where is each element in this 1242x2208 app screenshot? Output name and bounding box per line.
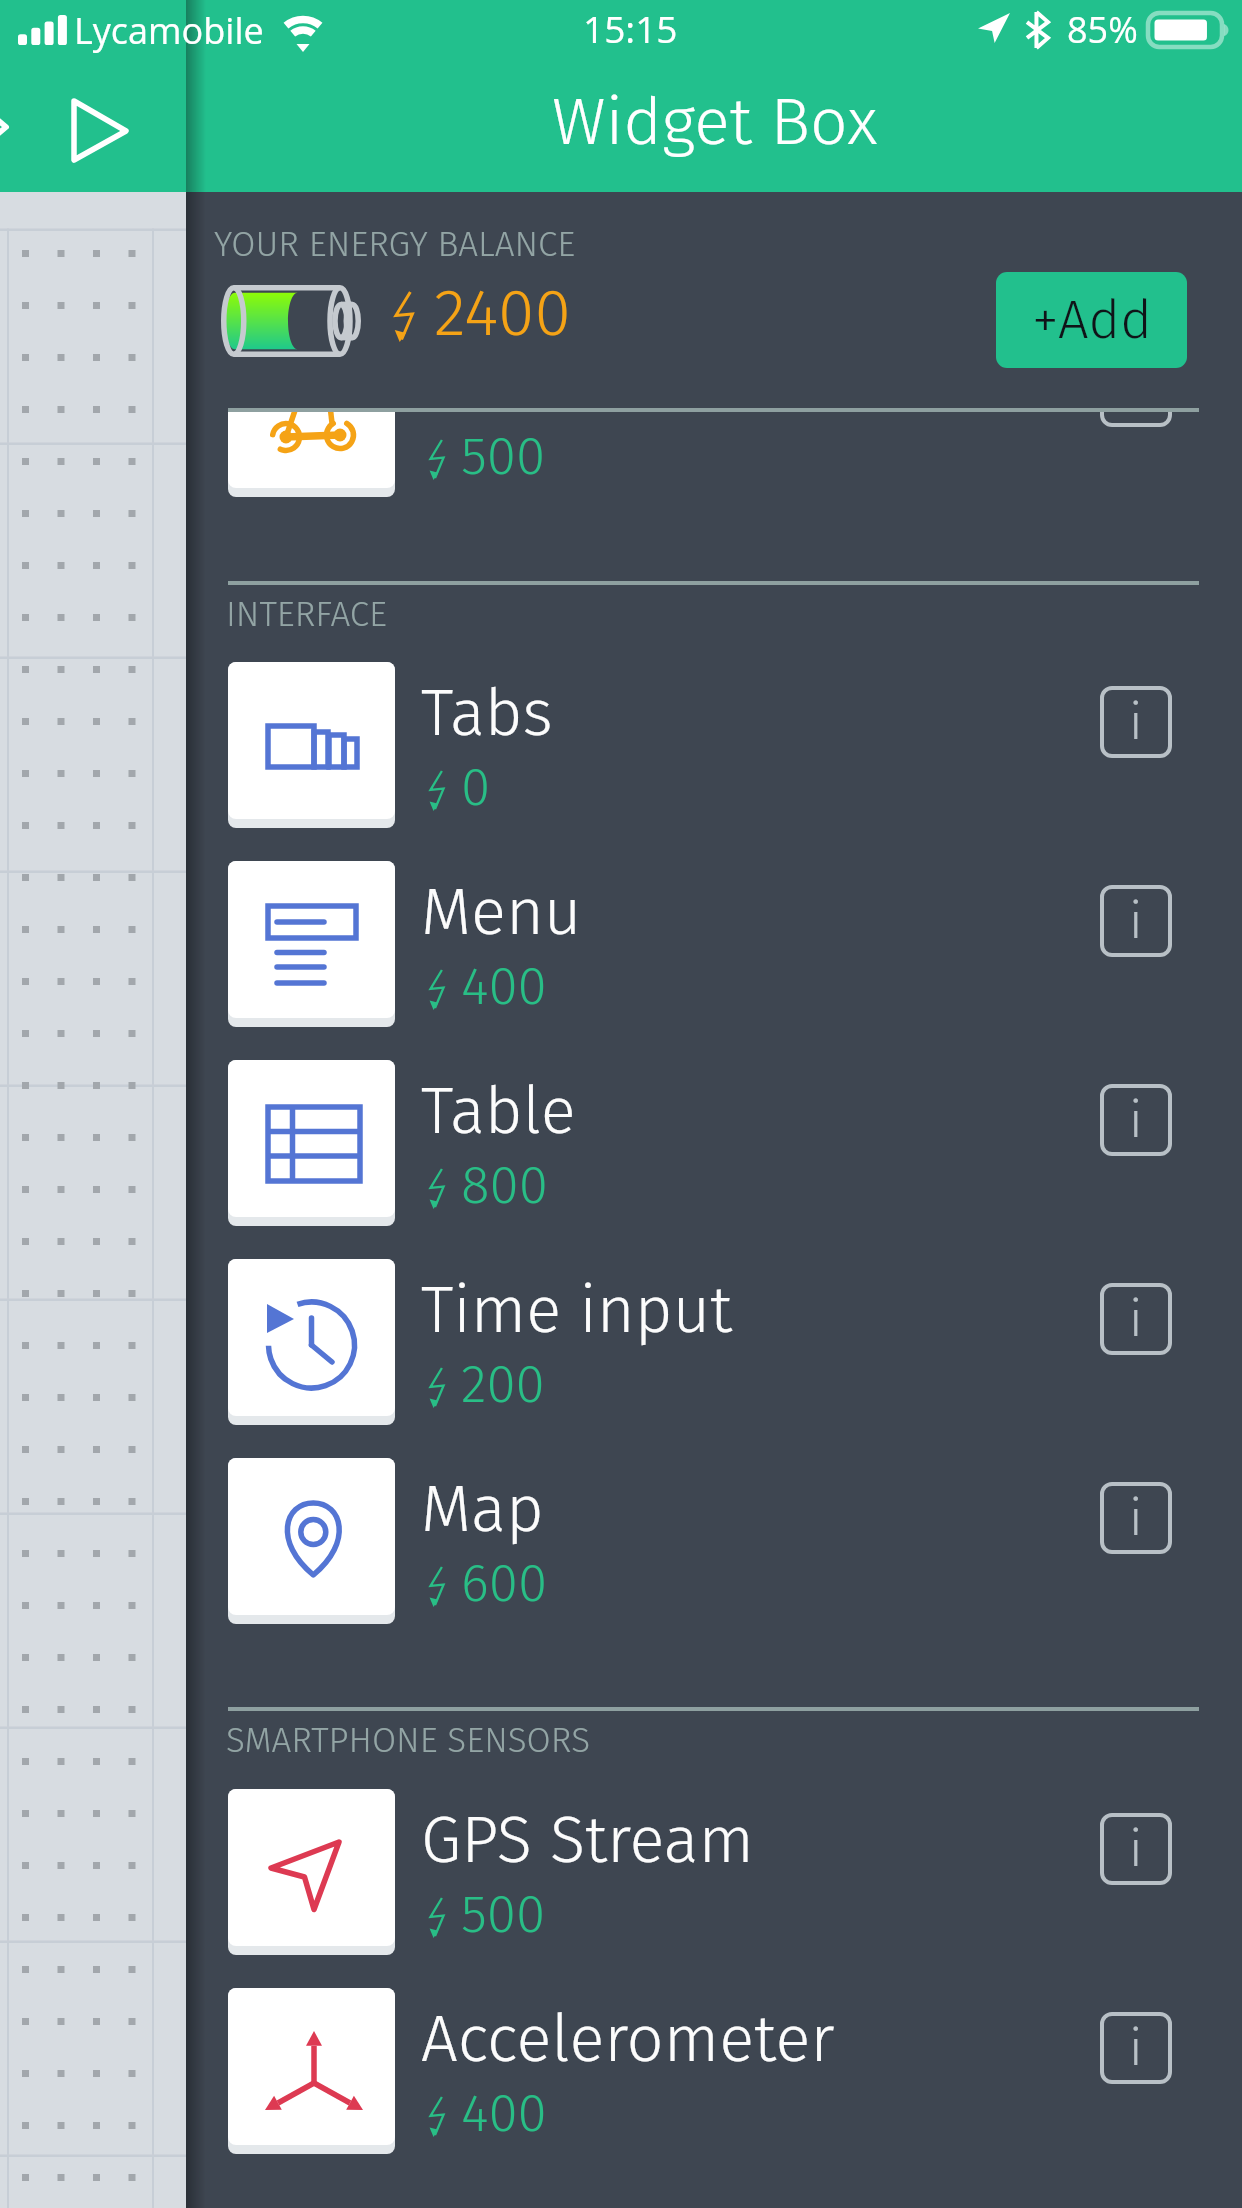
- staticText: i: [1129, 891, 1143, 951]
- staticText: i: [1129, 1819, 1143, 1879]
- button[interactable]: Accelerometer: [186, 1988, 1242, 2155]
- staticText: 85%: [1067, 5, 1138, 54]
- button[interactable]: GPS Stream: [186, 1789, 1242, 1956]
- button[interactable]: Play: [58, 88, 140, 170]
- staticText: 800: [461, 1153, 548, 1217]
- staticText: Menu: [421, 873, 582, 951]
- staticText: INTERFACE: [226, 593, 388, 635]
- button[interactable]: Info about GPS Stream: [1100, 1813, 1172, 1885]
- staticText: 15:15: [583, 3, 678, 53]
- button[interactable]: Info about Table: [1100, 1084, 1172, 1156]
- staticText: 200: [461, 1352, 545, 1416]
- button[interactable]: Info about Tabs: [1100, 686, 1172, 758]
- staticText: i: [1129, 1090, 1143, 1150]
- staticText: 0: [461, 755, 491, 819]
- staticText: +Add: [1032, 288, 1152, 353]
- staticText: Map: [421, 1470, 544, 1548]
- staticText: Lycamobile: [74, 6, 264, 55]
- staticText: 400: [461, 2081, 547, 2145]
- button[interactable]: Info about Map: [1100, 1482, 1172, 1554]
- staticText: 2400: [434, 273, 571, 352]
- button[interactable]: Info about Menu: [1100, 885, 1172, 957]
- button[interactable]: Menu: [186, 861, 1242, 1028]
- staticText: i: [1129, 1289, 1143, 1349]
- staticText: 500: [461, 1882, 546, 1946]
- button[interactable]: Tabs: [186, 662, 1242, 829]
- staticText: i: [1129, 692, 1143, 752]
- button[interactable]: Info about Scooter: [1100, 412, 1172, 427]
- staticText: Widget Box: [552, 82, 878, 161]
- staticText: SMARTPHONE SENSORS: [226, 1719, 591, 1761]
- staticText: GPS Stream: [421, 1801, 754, 1879]
- button[interactable]: Time input: [186, 1259, 1242, 1426]
- button[interactable]: Info about Time input: [1100, 1283, 1172, 1355]
- staticText: i: [1129, 2018, 1143, 2078]
- staticText: 400: [461, 954, 547, 1018]
- staticText: Accelerometer: [421, 2000, 835, 2078]
- staticText: 500: [461, 424, 546, 488]
- staticText: i: [1129, 1488, 1143, 1548]
- button[interactable]: Info about Accelerometer: [1100, 2012, 1172, 2084]
- staticText: YOUR ENERGY BALANCE: [214, 223, 576, 265]
- button[interactable]: Map: [186, 1458, 1242, 1625]
- staticText: 600: [461, 1551, 548, 1615]
- button[interactable]: +Add: [996, 272, 1187, 368]
- staticText: Table: [421, 1072, 576, 1150]
- button[interactable]: Table: [186, 1060, 1242, 1227]
- staticText: Time input: [421, 1271, 733, 1349]
- staticText: Tabs: [421, 674, 553, 752]
